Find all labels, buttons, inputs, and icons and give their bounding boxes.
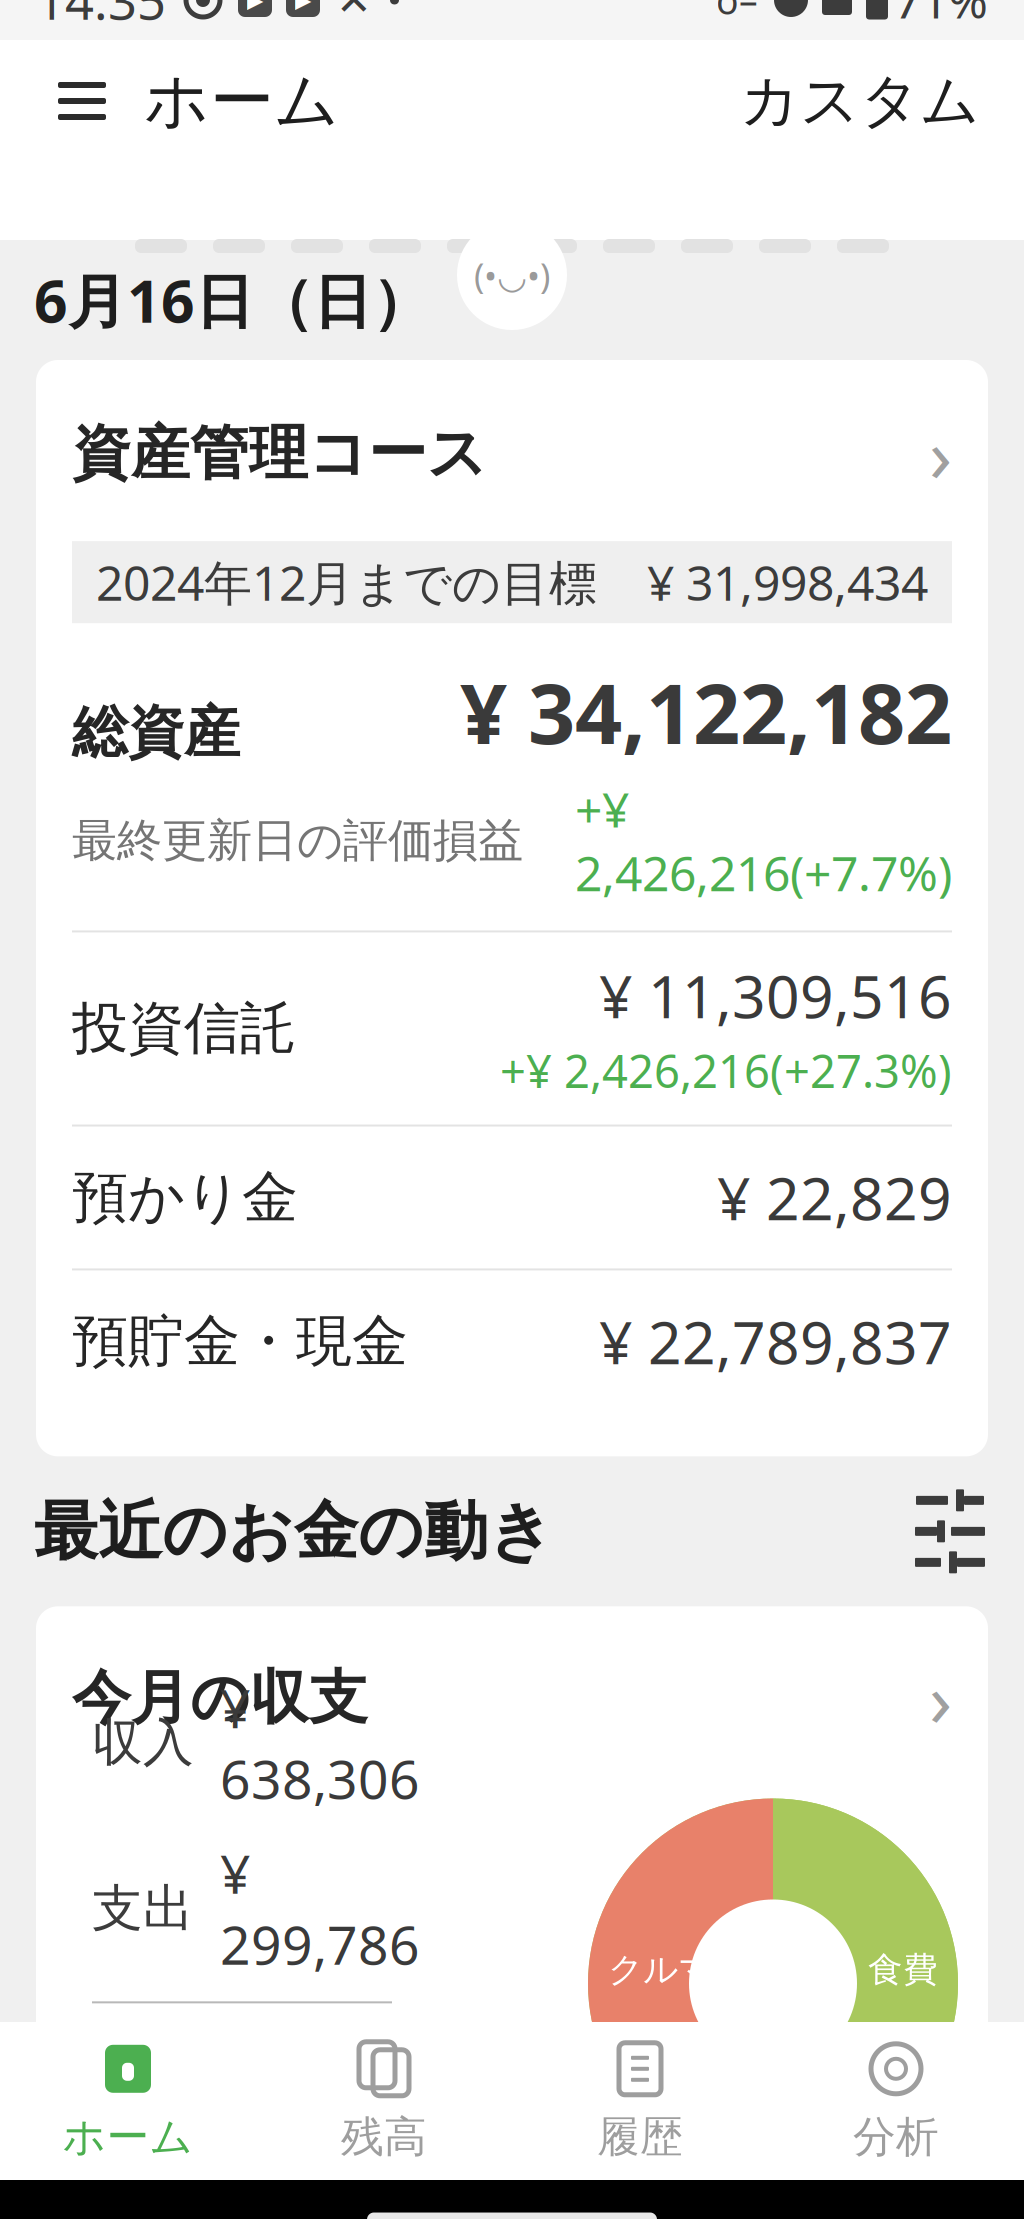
staticText: 資産管理コース (72, 417, 487, 490)
staticText: 6月16日（日） (34, 261, 431, 339)
staticText: +¥ 2,426,216(+7.7%) (575, 777, 952, 904)
staticText: ホーム (144, 62, 340, 140)
staticText: 収入 (92, 1712, 194, 1774)
staticText: ▶ (247, 0, 263, 12)
staticText: 残高 (341, 2111, 427, 2163)
staticText: ¥ 638,306 (220, 1672, 420, 1814)
staticText: › (929, 1648, 952, 1747)
staticText: 最終更新日の評価損益 (72, 813, 523, 868)
staticText: 2024年12月までの目標 (96, 550, 597, 614)
staticText: ▶ (295, 0, 311, 12)
staticText: 預貯金・現金 (72, 1307, 408, 1376)
button[interactable]: 履歴 (512, 2022, 768, 2180)
staticText: 総資産 (72, 698, 240, 767)
staticText: 今月の収支 (72, 1662, 368, 1734)
staticText: 14:35 (36, 0, 166, 34)
staticText: クルマ (608, 1948, 713, 1991)
staticText: (•◡•) (474, 252, 550, 298)
staticText: ¥ 34,122,182 (460, 657, 952, 767)
staticText: 支出 (92, 1877, 194, 1940)
staticText: ¥ 338,520 (220, 2029, 429, 2219)
staticText: ¥ 299,786 (220, 1838, 420, 1979)
staticText: › (929, 404, 952, 503)
staticText: 収支 (92, 2131, 194, 2193)
button[interactable]: 資産管理コース (36, 360, 988, 541)
staticText: 食費 (868, 1948, 938, 1991)
button[interactable]: 絞り込み (910, 1491, 990, 1571)
button[interactable]: メニュー (34, 53, 130, 149)
staticText: エンタメ (737, 2101, 869, 2140)
staticText: ¥ 11,309,516 (599, 956, 952, 1034)
staticText: o– (716, 0, 758, 25)
button[interactable]: カスタム (730, 49, 990, 153)
staticText: ✕ (336, 0, 372, 24)
staticText: ¥ 22,829 (717, 1158, 952, 1236)
staticText: 71% (894, 0, 988, 32)
staticText: +¥ 2,426,216(+27.3%) (500, 1040, 952, 1100)
staticText: 預かり金 (72, 1163, 298, 1232)
button[interactable]: 分析 (768, 2022, 1024, 2180)
staticText: 履歴 (597, 2111, 683, 2163)
staticText: 分析 (853, 2111, 939, 2163)
staticText: ¥ 31,998,434 (647, 550, 928, 614)
button[interactable]: 残高 (256, 2022, 512, 2180)
staticText: 最近のお金の動き (34, 1492, 554, 1571)
button[interactable]: ホーム (0, 2022, 256, 2180)
staticText: 投資信託 (72, 994, 296, 1063)
staticText: ¥ 22,789,837 (599, 1302, 952, 1380)
staticText: カスタム (740, 65, 980, 137)
button[interactable]: 今月の収支 (36, 1606, 988, 1773)
staticText: ホーム (62, 2111, 193, 2163)
